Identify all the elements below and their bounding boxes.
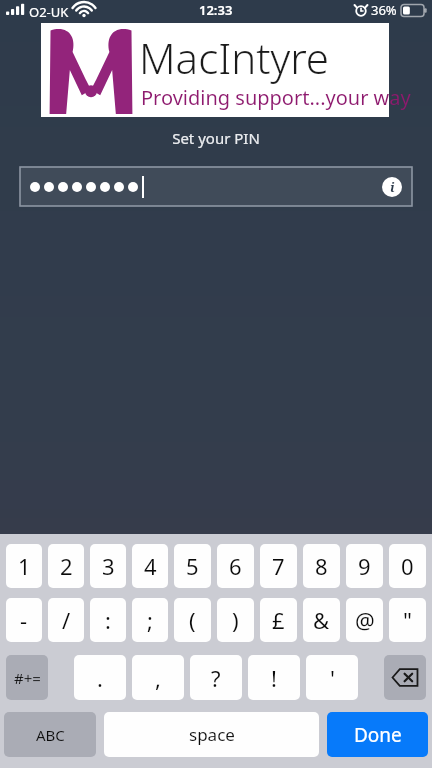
button[interactable]: Info bbox=[20, 167, 412, 206]
staticText: 12:33 bbox=[199, 1, 233, 19]
staticText: 4 bbox=[144, 551, 157, 581]
staticText: ABC bbox=[36, 725, 65, 745]
staticText: - bbox=[20, 605, 28, 635]
button[interactable]: & bbox=[303, 598, 340, 642]
button[interactable]: 3 bbox=[90, 544, 126, 588]
staticText: i bbox=[390, 178, 395, 196]
staticText: O2-UK bbox=[29, 3, 69, 21]
staticText: & bbox=[313, 605, 330, 635]
button[interactable]: ( bbox=[174, 598, 211, 642]
button[interactable]: : bbox=[90, 598, 126, 642]
staticText: ( bbox=[189, 605, 196, 635]
button[interactable]: £ bbox=[260, 598, 297, 642]
button[interactable]: 5 bbox=[174, 544, 211, 588]
staticText: ? bbox=[211, 663, 221, 693]
staticText: 0 bbox=[401, 551, 414, 581]
button[interactable]: #+= bbox=[6, 655, 48, 700]
button[interactable]: Done bbox=[327, 712, 428, 757]
button[interactable]: 0 bbox=[389, 544, 426, 588]
staticText: Providing support...your way bbox=[141, 84, 411, 111]
button[interactable]: Info bbox=[382, 177, 402, 197]
staticText: 9 bbox=[358, 551, 371, 581]
button[interactable]: ; bbox=[132, 598, 168, 642]
button[interactable]: 8 bbox=[303, 544, 340, 588]
button[interactable]: , bbox=[132, 655, 184, 700]
button[interactable]: ) bbox=[217, 598, 254, 642]
button[interactable]: " bbox=[389, 598, 426, 642]
staticText: Done bbox=[354, 722, 402, 748]
button[interactable]: 4 bbox=[132, 544, 168, 588]
staticText: " bbox=[403, 605, 412, 635]
staticText: ; bbox=[147, 605, 153, 635]
staticText: 3 bbox=[102, 551, 115, 581]
button[interactable]: 7 bbox=[260, 544, 297, 588]
staticText: . bbox=[97, 663, 103, 693]
staticText: 6 bbox=[229, 551, 242, 581]
staticText: ) bbox=[232, 605, 239, 635]
staticText: @ bbox=[355, 605, 375, 635]
staticText: £ bbox=[272, 605, 285, 635]
staticText: ! bbox=[271, 663, 277, 693]
staticText: , bbox=[155, 663, 161, 693]
button[interactable]: space bbox=[104, 712, 319, 757]
button[interactable]: ! bbox=[248, 655, 300, 700]
staticText: 7 bbox=[272, 551, 285, 581]
button[interactable]: 2 bbox=[48, 544, 84, 588]
staticText: 2 bbox=[60, 551, 73, 581]
button[interactable]: ABC bbox=[4, 712, 96, 757]
staticText: MacIntyre bbox=[139, 29, 330, 86]
button[interactable]: . bbox=[74, 655, 126, 700]
button[interactable]: - bbox=[6, 598, 42, 642]
staticText: ' bbox=[330, 663, 335, 693]
button[interactable]: ' bbox=[306, 655, 358, 700]
staticText: / bbox=[62, 605, 71, 635]
button[interactable]: / bbox=[48, 598, 84, 642]
staticText: 5 bbox=[186, 551, 199, 581]
button[interactable]: Backspace bbox=[384, 655, 426, 700]
staticText: 36% bbox=[371, 1, 397, 19]
button[interactable]: 6 bbox=[217, 544, 254, 588]
button[interactable]: 9 bbox=[346, 544, 383, 588]
staticText: #+= bbox=[14, 668, 41, 688]
button[interactable]: ? bbox=[190, 655, 242, 700]
button[interactable]: @ bbox=[346, 598, 383, 642]
staticText: : bbox=[105, 605, 111, 635]
staticText: 1 bbox=[18, 551, 31, 581]
button[interactable]: 1 bbox=[6, 544, 42, 588]
staticText: 8 bbox=[315, 551, 328, 581]
staticText: Set your PIN bbox=[0, 128, 432, 148]
staticText: space bbox=[189, 723, 235, 746]
